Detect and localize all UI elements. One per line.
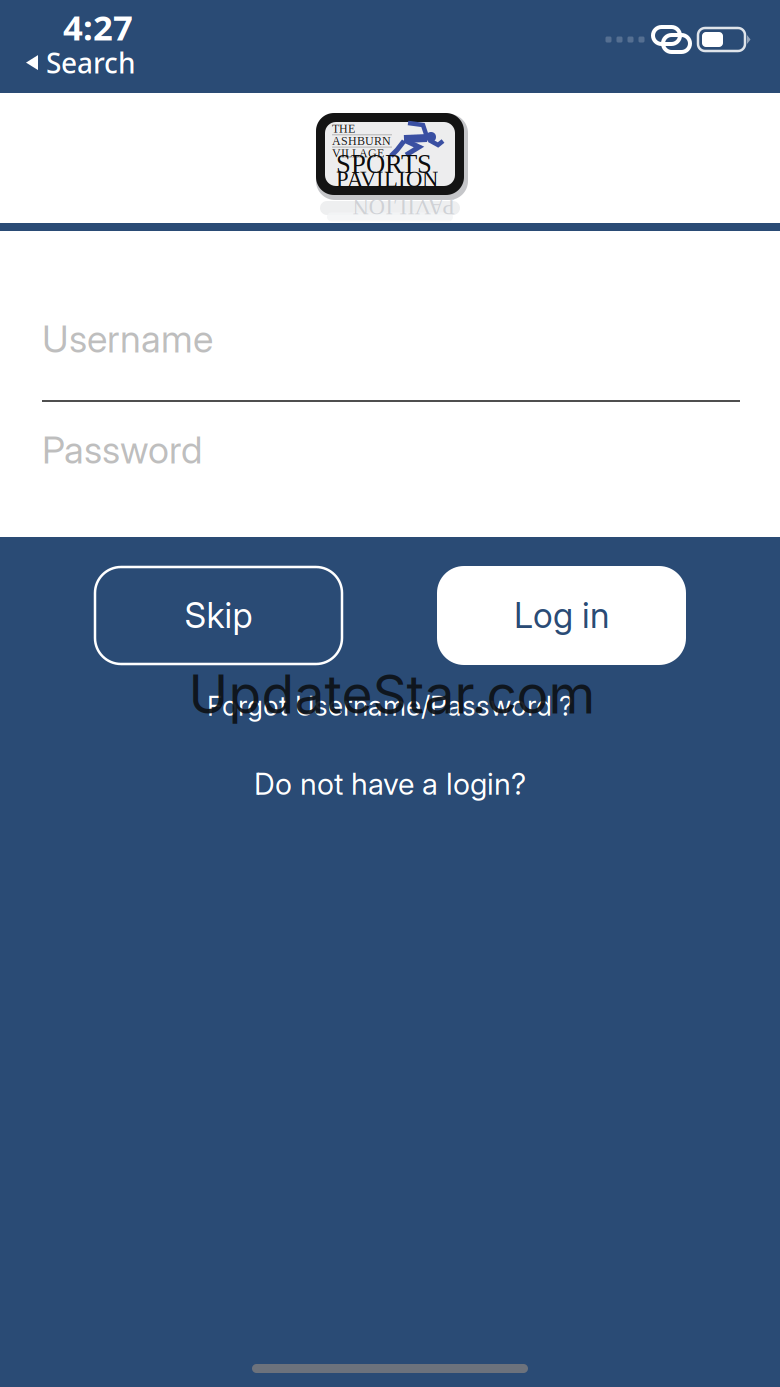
button[interactable]: Back to Search bbox=[22, 41, 140, 84]
button[interactable]: Username bbox=[42, 314, 740, 364]
staticText: PAVILION bbox=[336, 166, 438, 191]
button[interactable]: Forgot Username/Password ? bbox=[0, 684, 780, 728]
staticText: 4:27 bbox=[63, 4, 133, 50]
staticText: Forgot Username/Password ? bbox=[207, 690, 573, 722]
staticText: Search bbox=[46, 44, 136, 81]
staticText: Do not have a login? bbox=[254, 766, 526, 802]
button[interactable]: Skip bbox=[95, 567, 342, 664]
staticText: UpdateStar.com bbox=[188, 662, 595, 726]
staticText: Log in bbox=[514, 594, 609, 636]
staticText: ASHBURN bbox=[332, 134, 391, 148]
button[interactable]: Do not have a login? bbox=[0, 760, 780, 808]
staticText: Skip bbox=[184, 594, 252, 636]
staticText: Username bbox=[42, 316, 213, 362]
staticText: THE bbox=[332, 122, 355, 135]
staticText: SPORTS bbox=[336, 149, 432, 179]
button[interactable]: Password bbox=[42, 425, 740, 475]
staticText: Password bbox=[42, 427, 202, 473]
button[interactable]: Log in bbox=[437, 566, 686, 665]
staticText: PAVILION bbox=[335, 194, 437, 219]
staticText: VILLAGE bbox=[332, 147, 384, 160]
